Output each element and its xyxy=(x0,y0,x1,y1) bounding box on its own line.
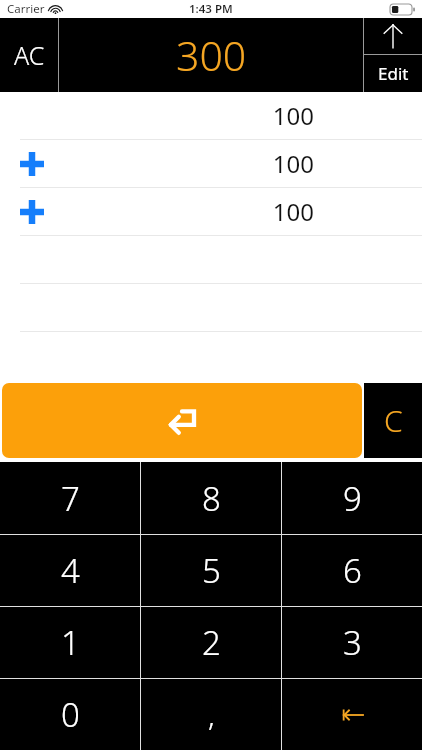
button[interactable]: 8 xyxy=(141,462,281,534)
button[interactable]: 5 xyxy=(141,535,281,606)
staticText: 3 xyxy=(343,620,362,665)
staticText: 7 xyxy=(61,476,80,521)
button[interactable]: Scroll up xyxy=(364,18,422,54)
button[interactable]: , xyxy=(141,679,281,750)
staticText: 6 xyxy=(343,548,362,593)
staticText: 1:43 PM xyxy=(189,1,233,17)
button[interactable]: 100 xyxy=(0,92,422,139)
button[interactable]: 9 xyxy=(282,462,422,534)
button[interactable]: 6 xyxy=(282,535,422,606)
button[interactable]: 100 xyxy=(0,140,422,187)
button[interactable]: 4 xyxy=(0,535,140,606)
button[interactable]: 0 xyxy=(0,679,140,750)
staticText: 8 xyxy=(202,476,221,521)
staticText: Carrier xyxy=(7,1,45,17)
staticText: 2 xyxy=(202,620,221,665)
staticText: 1 xyxy=(61,620,80,665)
staticText: 100 xyxy=(272,195,314,228)
staticText: AC xyxy=(14,38,45,72)
staticText: 100 xyxy=(272,99,314,132)
button[interactable]: C xyxy=(364,383,422,458)
button[interactable]: 7 xyxy=(0,462,140,534)
button[interactable]: Edit xyxy=(364,55,422,92)
button[interactable]: AC xyxy=(0,18,58,92)
button[interactable]: 3 xyxy=(282,607,422,678)
button[interactable]: Backspace xyxy=(282,679,422,750)
button[interactable]: 2 xyxy=(141,607,281,678)
staticText: 100 xyxy=(272,147,314,180)
staticText: 9 xyxy=(343,476,362,521)
staticText: 0 xyxy=(61,692,80,737)
staticText: 5 xyxy=(202,548,221,593)
button[interactable]: 100 xyxy=(0,188,422,235)
staticText: 300 xyxy=(176,27,247,83)
staticText: , xyxy=(208,694,215,735)
staticText: Edit xyxy=(378,62,409,85)
staticText: C xyxy=(384,400,403,441)
staticText: 4 xyxy=(61,548,80,593)
button[interactable]: Enter xyxy=(2,383,362,458)
button[interactable]: 1 xyxy=(0,607,140,678)
